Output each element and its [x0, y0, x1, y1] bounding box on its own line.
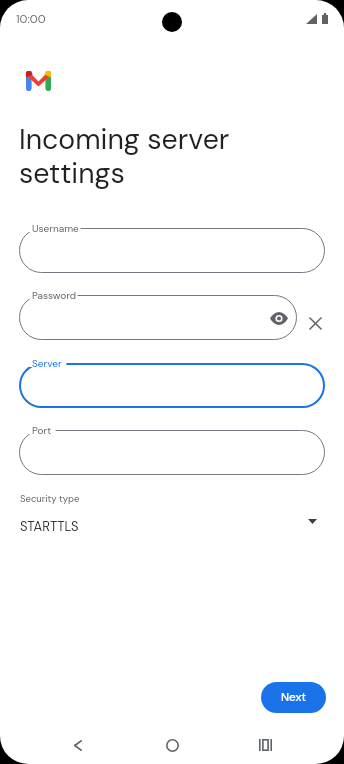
button[interactable]: Port — [19, 430, 325, 475]
button[interactable]: Next — [261, 682, 326, 713]
staticText: Password — [32, 289, 77, 302]
button[interactable]: Security type — [0, 488, 344, 538]
staticText: Incoming server settings — [19, 121, 230, 191]
button[interactable]: Clear password — [303, 311, 327, 335]
button[interactable]: Back — [62, 729, 94, 761]
button[interactable]: Recent apps — [249, 729, 281, 761]
staticText: Port — [32, 424, 52, 437]
button[interactable]: Show password — [265, 304, 293, 332]
button[interactable]: Password — [19, 295, 297, 340]
staticText: Next — [281, 690, 307, 705]
button[interactable]: Home — [156, 729, 188, 761]
staticText: STARTTLS — [20, 518, 79, 535]
button[interactable]: Username — [19, 228, 325, 273]
staticText: Server — [32, 357, 62, 370]
staticText: Username — [32, 222, 79, 235]
staticText: Security type — [20, 493, 80, 505]
button[interactable]: Server — [19, 363, 325, 408]
staticText: 10:00 — [16, 12, 46, 27]
